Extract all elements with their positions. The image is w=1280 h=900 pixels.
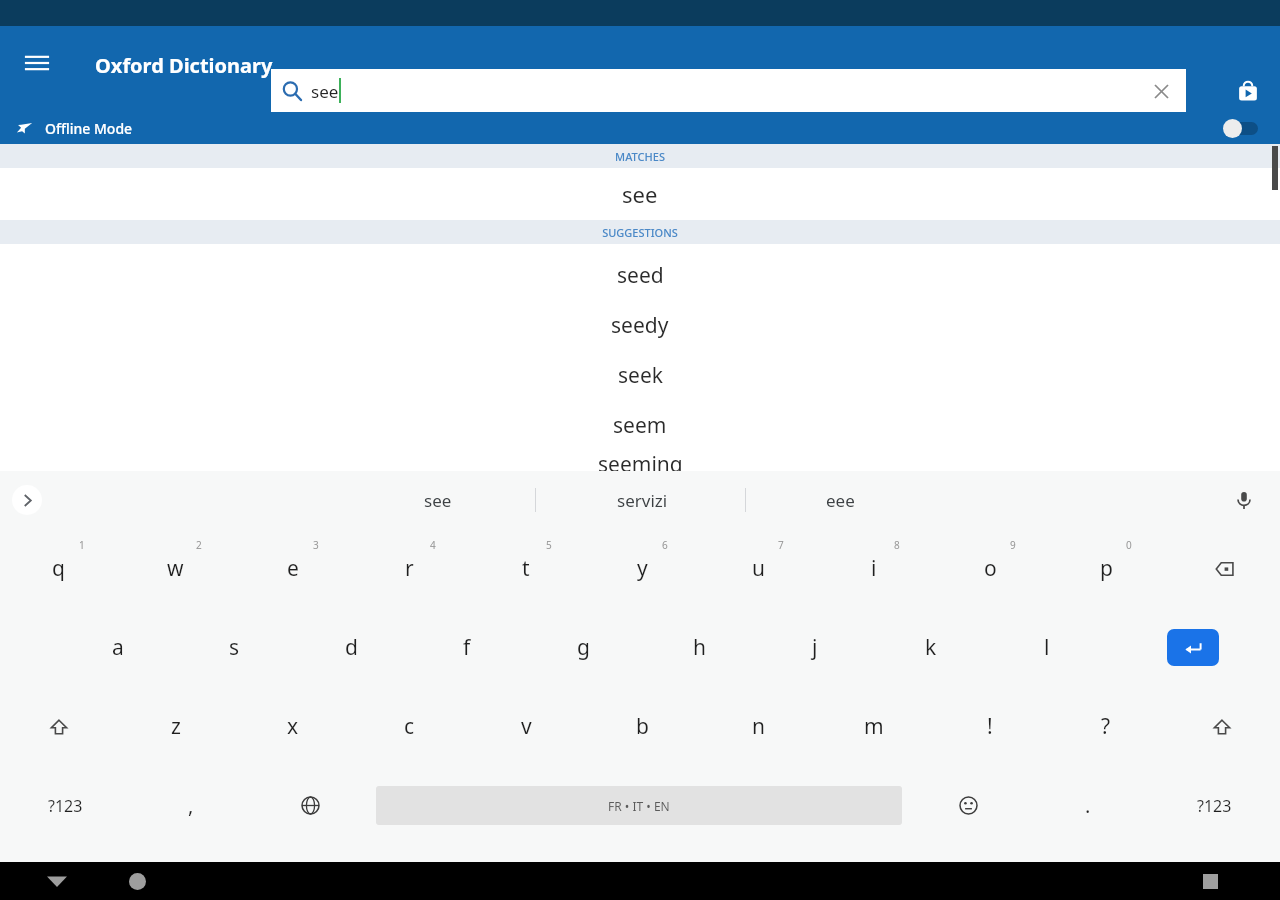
button[interactable]: ?123: [1148, 766, 1280, 845]
staticText: g: [577, 633, 590, 662]
staticText: t: [522, 554, 530, 583]
staticText: SUGGESTIONS: [602, 225, 678, 240]
button[interactable]: v: [468, 687, 584, 766]
staticText: q: [52, 554, 65, 583]
staticText: f: [463, 633, 471, 662]
button[interactable]: Clear search: [1144, 74, 1178, 108]
staticText: eee: [826, 489, 855, 512]
button[interactable]: !: [932, 687, 1048, 766]
button[interactable]: ?123: [0, 766, 131, 845]
button[interactable]: Shift: [1164, 687, 1280, 766]
staticText: Offline Mode: [45, 119, 133, 138]
staticText: a: [112, 633, 124, 662]
staticText: seedy: [611, 311, 669, 340]
button[interactable]: seem: [0, 400, 1280, 450]
button[interactable]: i: [816, 529, 932, 608]
button[interactable]: n: [700, 687, 816, 766]
button[interactable]: seedy: [0, 300, 1280, 350]
staticText: 5: [546, 538, 552, 552]
button[interactable]: Voice input: [1228, 484, 1260, 516]
staticText: z: [171, 712, 181, 741]
button[interactable]: f: [409, 608, 525, 687]
button[interactable]: Expand toolbar: [12, 485, 42, 515]
staticText: seem: [613, 411, 667, 440]
staticText: MATCHES: [615, 149, 665, 164]
button[interactable]: a: [59, 608, 176, 687]
staticText: FR • IT • EN: [608, 798, 670, 814]
staticText: p: [1100, 554, 1113, 583]
button[interactable]: s: [176, 608, 293, 687]
staticText: 7: [778, 538, 784, 552]
button[interactable]: Shift: [0, 687, 117, 766]
button[interactable]: h: [641, 608, 757, 687]
button[interactable]: e: [234, 529, 351, 608]
button[interactable]: Emoji: [908, 766, 1028, 845]
button[interactable]: r: [351, 529, 468, 608]
staticText: 3: [313, 538, 319, 552]
staticText: d: [345, 633, 358, 662]
staticText: .: [1085, 792, 1091, 819]
button[interactable]: seeming: [0, 450, 1280, 471]
button[interactable]: Backspace: [1164, 529, 1280, 608]
button[interactable]: x: [234, 687, 351, 766]
button[interactable]: d: [293, 608, 409, 687]
button[interactable]: ?: [1048, 687, 1164, 766]
staticText: see: [622, 179, 658, 209]
button[interactable]: seek: [0, 350, 1280, 400]
button[interactable]: t: [468, 529, 584, 608]
button[interactable]: Back: [32, 862, 82, 900]
staticText: r: [405, 554, 414, 583]
staticText: 8: [894, 538, 900, 552]
button[interactable]: Toggle offline mode: [1218, 115, 1266, 141]
staticText: ?123: [48, 795, 83, 817]
staticText: i: [871, 554, 877, 583]
staticText: seek: [618, 361, 663, 390]
button[interactable]: FR • IT • EN: [376, 786, 902, 825]
button[interactable]: Home: [112, 862, 162, 900]
staticText: b: [636, 712, 649, 741]
button[interactable]: k: [873, 608, 989, 687]
button[interactable]: l: [989, 608, 1105, 687]
button[interactable]: o: [932, 529, 1048, 608]
staticText: e: [287, 554, 299, 583]
button[interactable]: seed: [0, 250, 1280, 300]
button[interactable]: see: [271, 69, 1186, 112]
button[interactable]: b: [584, 687, 700, 766]
staticText: m: [864, 712, 884, 741]
button[interactable]: c: [351, 687, 468, 766]
staticText: 4: [430, 538, 436, 552]
button[interactable]: Enter: [1105, 608, 1280, 687]
staticText: seeming: [598, 450, 683, 471]
button[interactable]: y: [584, 529, 700, 608]
button[interactable]: w: [117, 529, 234, 608]
button[interactable]: q: [0, 529, 117, 608]
staticText: k: [925, 633, 937, 662]
staticText: v: [521, 712, 532, 741]
staticText: seed: [617, 261, 664, 290]
button[interactable]: eee: [750, 471, 930, 529]
button[interactable]: g: [525, 608, 641, 687]
button[interactable]: see: [0, 168, 1280, 220]
staticText: 9: [1010, 538, 1016, 552]
button[interactable]: Store: [1225, 68, 1271, 114]
button[interactable]: Change language: [250, 766, 370, 845]
button[interactable]: Offline Mode: [0, 112, 1280, 144]
staticText: 0: [1126, 538, 1132, 552]
staticText: l: [1044, 633, 1050, 662]
staticText: ?: [1101, 712, 1111, 741]
button[interactable]: Open navigation menu: [14, 40, 60, 86]
button[interactable]: ,: [131, 766, 250, 845]
button[interactable]: see: [340, 471, 535, 529]
button[interactable]: .: [1028, 766, 1148, 845]
button[interactable]: p: [1048, 529, 1164, 608]
button[interactable]: j: [757, 608, 873, 687]
staticText: servizi: [617, 489, 668, 512]
staticText: !: [987, 712, 993, 741]
staticText: w: [167, 554, 184, 583]
button[interactable]: Recent apps: [1185, 862, 1235, 900]
button[interactable]: u: [700, 529, 816, 608]
staticText: o: [984, 554, 997, 583]
button[interactable]: z: [117, 687, 234, 766]
button[interactable]: m: [816, 687, 932, 766]
button[interactable]: servizi: [540, 471, 745, 529]
